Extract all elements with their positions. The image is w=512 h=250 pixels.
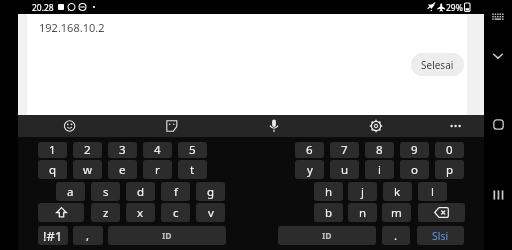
- staticText: 2: [84, 142, 91, 158]
- staticText: !#1: [43, 227, 63, 245]
- button[interactable]: Emoji: [59, 115, 81, 137]
- button[interactable]: Settings: [365, 115, 387, 137]
- button[interactable]: More options: [445, 115, 467, 137]
- button[interactable]: 2: [73, 142, 102, 158]
- staticText: 3: [119, 142, 126, 158]
- staticText: l: [431, 184, 434, 200]
- button[interactable]: 8: [365, 142, 394, 158]
- staticText: q: [49, 162, 57, 178]
- button[interactable]: b: [314, 203, 343, 222]
- staticText: k: [394, 184, 401, 200]
- button[interactable]: j: [348, 182, 377, 201]
- button[interactable]: e: [108, 160, 137, 179]
- staticText: y: [307, 162, 313, 178]
- button[interactable]: Voice input: [263, 115, 285, 137]
- button[interactable]: ID: [278, 226, 376, 245]
- staticText: .: [394, 228, 398, 244]
- button[interactable]: 4: [143, 142, 172, 158]
- staticText: j: [361, 184, 364, 200]
- button[interactable]: c: [161, 203, 190, 222]
- button[interactable]: o: [400, 160, 429, 179]
- staticText: s: [103, 184, 109, 200]
- button[interactable]: a: [56, 182, 85, 201]
- staticText: m: [391, 205, 402, 221]
- button[interactable]: ,: [73, 226, 103, 245]
- staticText: 4: [154, 142, 161, 158]
- staticText: ,: [86, 228, 90, 244]
- button[interactable]: u: [330, 160, 359, 179]
- staticText: f: [174, 184, 178, 200]
- button[interactable]: Home: [484, 101, 512, 148]
- button[interactable]: h: [314, 182, 343, 201]
- staticText: Slsi: [432, 229, 449, 243]
- staticText: p: [446, 162, 454, 178]
- staticText: 9: [411, 142, 418, 158]
- staticText: 7: [341, 142, 348, 158]
- button[interactable]: r: [143, 160, 172, 179]
- button[interactable]: q: [38, 160, 67, 179]
- staticText: g: [207, 184, 215, 200]
- staticText: 5: [189, 142, 196, 158]
- button[interactable]: 5: [178, 142, 207, 158]
- staticText: z: [103, 205, 109, 221]
- button[interactable]: ID: [108, 226, 226, 245]
- staticText: d: [137, 184, 145, 200]
- button[interactable]: 3: [108, 142, 137, 158]
- button[interactable]: i: [365, 160, 394, 179]
- staticText: n: [359, 205, 367, 221]
- button[interactable]: 0: [435, 142, 464, 158]
- button[interactable]: key: [38, 203, 84, 222]
- button[interactable]: n: [348, 203, 377, 222]
- staticText: 1: [49, 142, 56, 158]
- button[interactable]: key: [418, 203, 465, 222]
- button[interactable]: w: [73, 160, 102, 179]
- staticText: i: [378, 162, 381, 178]
- button[interactable]: y: [295, 160, 324, 179]
- button[interactable]: Selesai: [411, 53, 464, 76]
- staticText: r: [155, 162, 160, 178]
- button[interactable]: g: [196, 182, 225, 201]
- button[interactable]: p: [435, 160, 464, 179]
- staticText: v: [208, 205, 214, 221]
- staticText: a: [67, 184, 74, 200]
- button[interactable]: l: [418, 182, 447, 201]
- button[interactable]: d: [126, 182, 155, 201]
- staticText: o: [411, 162, 418, 178]
- staticText: u: [341, 162, 349, 178]
- staticText: 29%: [446, 2, 463, 14]
- button[interactable]: x: [126, 203, 155, 222]
- staticText: 20.28: [32, 2, 54, 14]
- staticText: ID: [162, 230, 172, 242]
- staticText: ID: [322, 230, 332, 242]
- button[interactable]: k: [383, 182, 412, 201]
- staticText: b: [325, 205, 333, 221]
- staticText: h: [325, 184, 333, 200]
- button[interactable]: .: [382, 226, 410, 245]
- button[interactable]: 9: [400, 142, 429, 158]
- button[interactable]: Slsi: [417, 226, 464, 245]
- button[interactable]: Recent apps: [484, 172, 512, 218]
- button[interactable]: z: [91, 203, 120, 222]
- button[interactable]: v: [196, 203, 225, 222]
- staticText: 8: [376, 142, 383, 158]
- button[interactable]: s: [91, 182, 120, 201]
- button[interactable]: Show keyboard: [484, 0, 512, 33]
- button[interactable]: t: [178, 160, 207, 179]
- staticText: Selesai: [421, 58, 454, 72]
- staticText: 6: [306, 142, 313, 158]
- button[interactable]: !#1: [38, 226, 68, 245]
- staticText: w: [83, 162, 93, 178]
- staticText: t: [190, 162, 195, 178]
- button[interactable]: Back: [484, 33, 512, 78]
- button[interactable]: 1: [38, 142, 67, 158]
- staticText: e: [119, 162, 126, 178]
- staticText: c: [173, 205, 179, 221]
- staticText: 0: [446, 142, 453, 158]
- staticText: x: [137, 205, 144, 221]
- staticText: 192.168.10.2: [39, 20, 105, 35]
- button[interactable]: Stickers: [161, 115, 183, 137]
- button[interactable]: m: [382, 203, 411, 222]
- button[interactable]: 6: [295, 142, 324, 158]
- button[interactable]: 7: [330, 142, 359, 158]
- button[interactable]: f: [161, 182, 190, 201]
